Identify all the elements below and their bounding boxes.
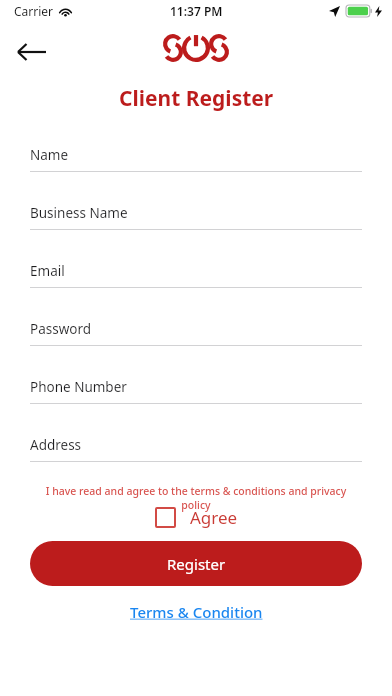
staticText: Carrier (14, 3, 54, 19)
staticText: Address (30, 436, 82, 454)
button[interactable]: Password (30, 318, 362, 364)
button[interactable]: Agree (155, 506, 238, 529)
staticText: Name (30, 146, 69, 164)
staticText: Business Name (30, 204, 128, 222)
staticText: 11:37 PM (170, 3, 223, 19)
button[interactable]: Phone Number (30, 376, 362, 422)
button[interactable]: Name (30, 144, 362, 190)
staticText: Password (30, 320, 92, 338)
staticText: Client Register (119, 84, 274, 113)
staticText: Email (30, 262, 65, 280)
button[interactable]: Register (30, 541, 362, 586)
staticText: Phone Number (30, 378, 127, 396)
button[interactable]: Back (8, 32, 56, 72)
staticText: Agree (190, 506, 238, 529)
button[interactable]: Terms & Condition (124, 598, 269, 626)
button[interactable]: Email (30, 260, 362, 306)
button[interactable]: Business Name (30, 202, 362, 248)
button[interactable]: Address (30, 434, 362, 480)
staticText: Register (167, 554, 226, 574)
staticText: I have read and agree to the terms & con… (30, 484, 362, 512)
staticText: Terms & Condition (130, 602, 263, 622)
